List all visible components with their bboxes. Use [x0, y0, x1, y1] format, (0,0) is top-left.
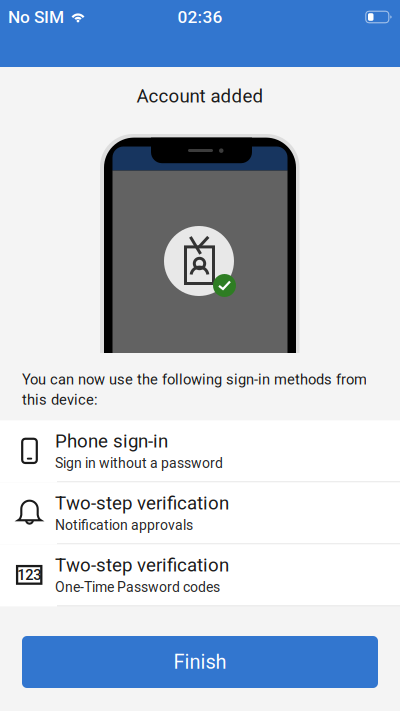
staticText: Notification approvals [55, 517, 193, 533]
staticText: No SIM [8, 7, 64, 27]
button[interactable]: Phone sign-in [0, 420, 400, 482]
staticText: You can now use the following sign-in me… [22, 371, 367, 408]
staticText: Sign in without a password [55, 455, 223, 471]
staticText: Two-step verification [55, 554, 229, 576]
button[interactable]: Two-step verification [0, 482, 400, 544]
button[interactable]: Finish [22, 636, 378, 688]
staticText: Finish [173, 650, 226, 674]
button[interactable]: 123 [0, 544, 400, 606]
staticText: 123 [17, 566, 41, 583]
staticText: Two-step verification [55, 492, 229, 514]
staticText: Account added [136, 85, 263, 107]
staticText: One-Time Password codes [55, 579, 220, 595]
staticText: 02:36 [177, 7, 222, 27]
staticText: Phone sign-in [55, 430, 168, 452]
